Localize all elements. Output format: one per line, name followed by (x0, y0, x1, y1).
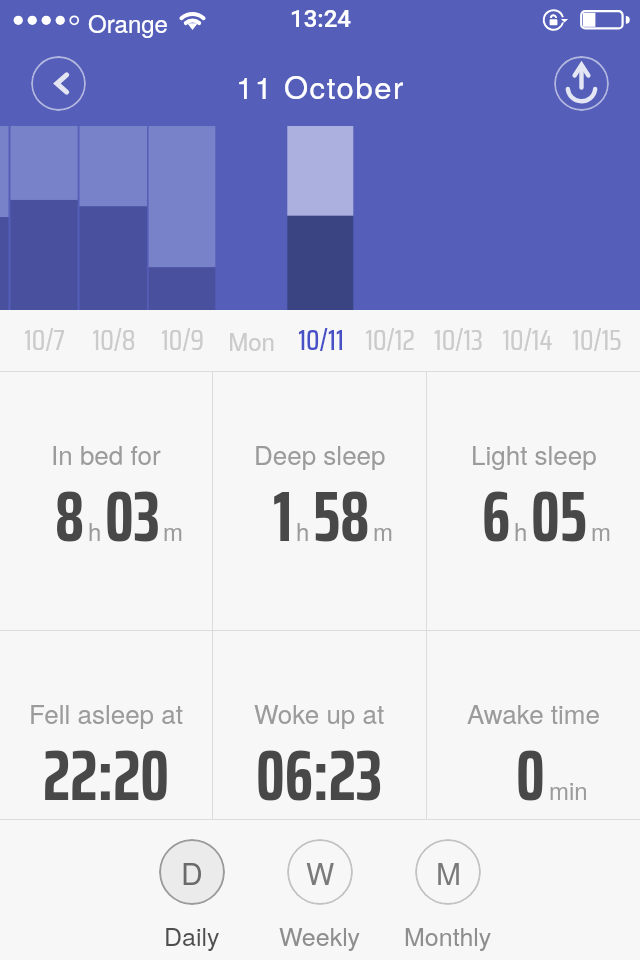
staticText: W (306, 851, 335, 894)
staticText: m (163, 513, 183, 547)
staticText: 6 (482, 459, 511, 572)
staticText: min (549, 772, 588, 806)
staticText: m (591, 513, 611, 547)
button[interactable]: Awake time (427, 631, 640, 819)
staticText: 22:20 (43, 718, 170, 831)
staticText: D (181, 851, 203, 894)
staticText: 0 (516, 718, 545, 831)
button[interactable]: Woke up at (213, 631, 426, 819)
staticText: 10/12 (365, 318, 415, 362)
staticText: 10/8 (92, 318, 136, 362)
button[interactable]: W (256, 820, 384, 960)
button[interactable]: Back (31, 56, 86, 111)
button[interactable]: In bed for (0, 372, 212, 630)
staticText: Orange (88, 5, 168, 39)
staticText: 8 (55, 459, 85, 572)
button[interactable]: 10/11 (286, 310, 355, 371)
staticText: Awake time (467, 694, 600, 731)
staticText: 58 (313, 459, 370, 572)
button[interactable]: Deep sleep (213, 372, 426, 630)
staticText: 05 (531, 459, 588, 572)
staticText: 03 (105, 459, 160, 572)
button[interactable]: D (128, 820, 256, 960)
staticText: 13:24 (290, 5, 351, 33)
staticText: h (296, 513, 310, 547)
button[interactable]: 10/13 (424, 310, 493, 371)
button[interactable]: 10/14 (493, 310, 562, 371)
button[interactable]: Mon (217, 310, 286, 371)
staticText: h (88, 513, 102, 547)
other: Rotation lock (544, 9, 570, 32)
staticText: Weekly (279, 917, 361, 953)
staticText: 10/9 (161, 318, 204, 362)
button[interactable]: 10/15 (562, 310, 631, 371)
staticText: Deep sleep (254, 435, 386, 472)
staticText: Monthly (404, 917, 492, 953)
staticText: 06:23 (256, 718, 383, 831)
staticText: 10/15 (572, 318, 622, 362)
staticText: Fell asleep at (29, 694, 183, 731)
button[interactable]: 10/12 (355, 310, 424, 371)
staticText: M (436, 851, 461, 894)
button[interactable]: M (384, 820, 512, 960)
staticText: 10/14 (502, 318, 553, 362)
staticText: 11 October (236, 63, 406, 107)
button[interactable]: 10/7 (10, 310, 79, 371)
staticText: 10/11 (298, 318, 344, 362)
button[interactable]: Light sleep (427, 372, 640, 630)
staticText: 1 (273, 459, 293, 572)
staticText: 10/13 (434, 318, 483, 362)
staticText: In bed for (51, 435, 161, 472)
staticText: h (514, 513, 528, 547)
staticText: Woke up at (254, 694, 385, 731)
staticText: Light sleep (471, 435, 597, 472)
button[interactable]: Share (554, 56, 609, 111)
button[interactable]: Fell asleep at (0, 631, 212, 819)
staticText: Daily (164, 917, 220, 953)
button[interactable]: 10/9 (148, 310, 217, 371)
staticText: Mon (228, 323, 275, 357)
staticText: m (373, 513, 393, 547)
staticText: 10/7 (24, 318, 65, 362)
button[interactable]: 10/8 (79, 310, 148, 371)
